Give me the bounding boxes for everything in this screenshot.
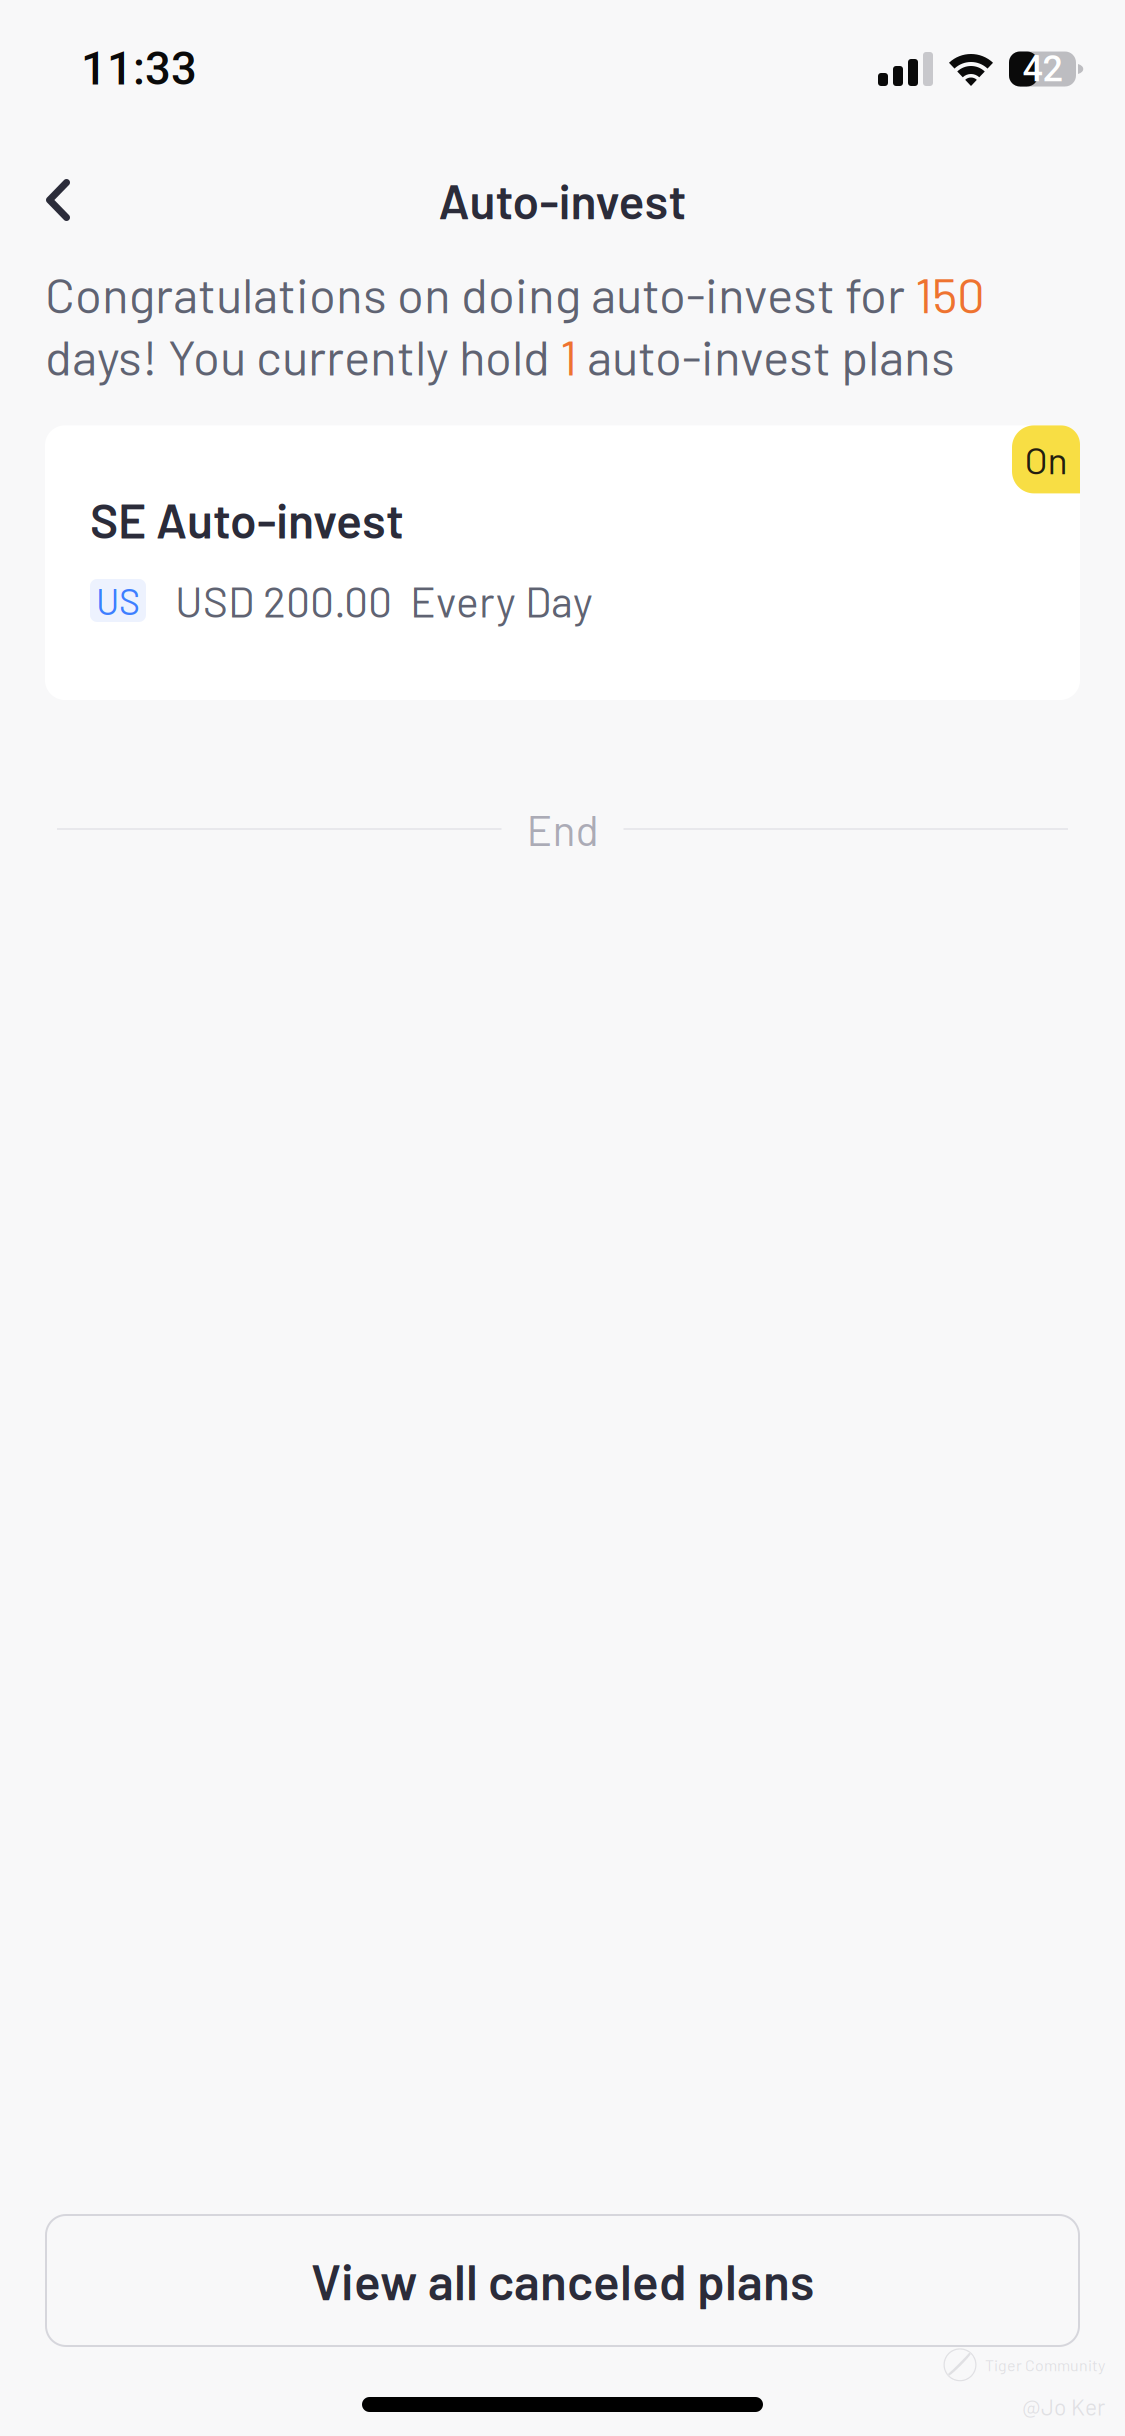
staticText: SE Auto-invest — [90, 490, 404, 548]
staticText: Congratulations on doing auto-invest for… — [45, 264, 985, 385]
button[interactable]: Back — [0, 156, 104, 244]
staticText: USD 200.00 Every Day — [175, 575, 593, 626]
button[interactable]: SE Auto-invest — [45, 425, 1080, 700]
staticText: @Jo Ker — [1022, 2393, 1105, 2420]
button[interactable]: View all canceled plans — [46, 2215, 1079, 2346]
staticText: US — [96, 579, 140, 622]
staticText: On — [1024, 437, 1067, 482]
staticText: Auto-invest — [438, 171, 686, 229]
staticText: View all canceled plans — [311, 2251, 814, 2310]
staticText: End — [526, 803, 598, 855]
staticText: 42 — [1022, 48, 1062, 90]
staticText: 11:33 — [81, 42, 197, 95]
staticText: Tiger Community — [985, 2355, 1105, 2374]
